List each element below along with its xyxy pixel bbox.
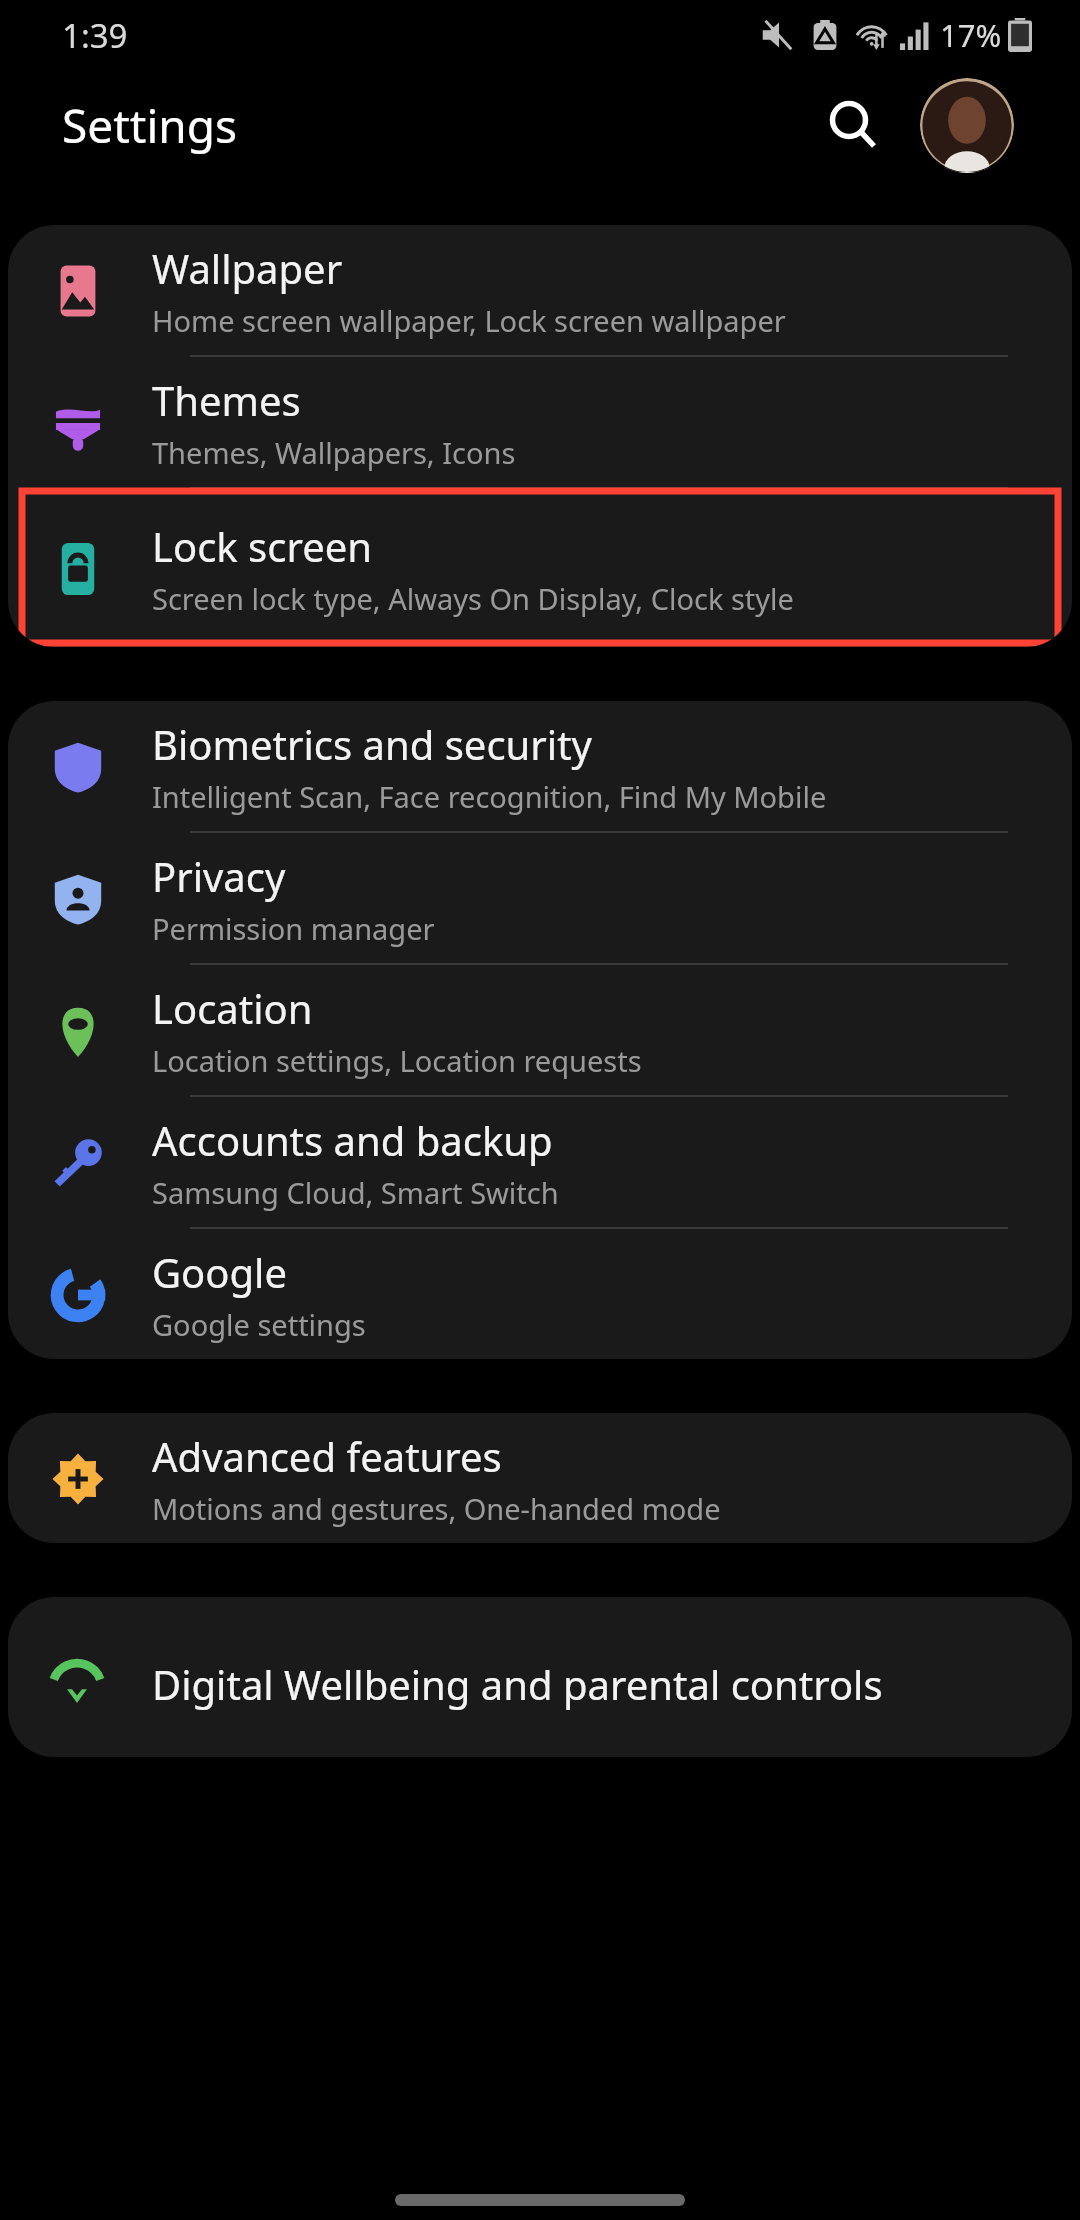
staticText: Google settings xyxy=(152,1305,366,1344)
staticText: Home screen wallpaper, Lock screen wallp… xyxy=(152,301,786,340)
button[interactable]: Account profile xyxy=(919,77,1015,173)
staticText: 1:39 xyxy=(62,13,128,58)
staticText: Accounts and backup xyxy=(152,1113,553,1167)
button[interactable]: Advanced features xyxy=(8,1413,1072,1543)
staticText: Intelligent Scan, Face recognition, Find… xyxy=(152,777,827,816)
staticText: Google xyxy=(152,1245,287,1299)
button[interactable]: Search xyxy=(813,85,893,165)
staticText: Permission manager xyxy=(152,909,435,948)
button[interactable]: Lock screen xyxy=(8,489,1072,647)
staticText: Themes xyxy=(152,373,301,427)
staticText: Settings xyxy=(62,94,238,157)
staticText: Advanced features xyxy=(152,1429,502,1483)
staticText: Motions and gestures, One-handed mode xyxy=(152,1489,721,1528)
button[interactable]: Biometrics and security xyxy=(8,701,1072,831)
button[interactable]: Location xyxy=(8,965,1072,1095)
staticText: Wallpaper xyxy=(152,241,343,295)
staticText: Screen lock type, Always On Display, Clo… xyxy=(152,579,794,618)
staticText: Lock screen xyxy=(152,519,373,573)
staticText: Privacy xyxy=(152,849,286,903)
staticText: 17% xyxy=(940,14,1002,56)
staticText: Themes, Wallpapers, Icons xyxy=(152,433,516,472)
button[interactable]: Accounts and backup xyxy=(8,1097,1072,1227)
button[interactable]: Wallpaper xyxy=(8,225,1072,355)
staticText: Digital Wellbeing and parental controls xyxy=(152,1657,883,1711)
staticText: Samsung Cloud, Smart Switch xyxy=(152,1173,559,1212)
button[interactable]: Digital Wellbeing and parental controls xyxy=(8,1597,1072,1757)
button[interactable]: Themes xyxy=(8,357,1072,487)
staticText: Biometrics and security xyxy=(152,717,592,771)
button[interactable]: Privacy xyxy=(8,833,1072,963)
button[interactable]: Google xyxy=(8,1229,1072,1359)
staticText: Location settings, Location requests xyxy=(152,1041,642,1080)
staticText: Location xyxy=(152,981,313,1035)
